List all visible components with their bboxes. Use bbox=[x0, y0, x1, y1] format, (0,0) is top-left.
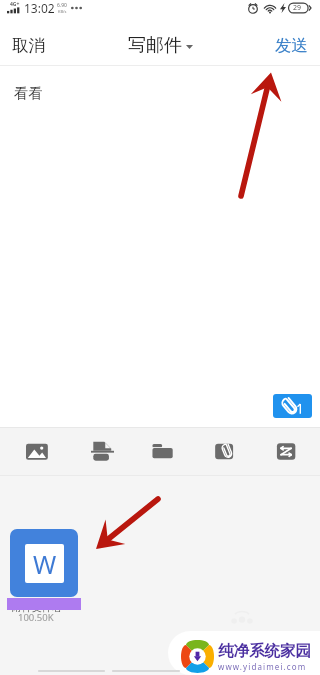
staticText: 13:02 bbox=[24, 0, 55, 16]
button[interactable]: Transfer bbox=[256, 428, 320, 475]
staticText: 纯净系统家园 bbox=[218, 641, 311, 661]
staticText: 看看 bbox=[14, 84, 43, 102]
staticText: www.yidaimei.com bbox=[218, 661, 307, 672]
button[interactable]: Attachments, 1 bbox=[273, 394, 312, 418]
staticText: 发送 bbox=[275, 35, 308, 56]
button[interactable]: Scan document bbox=[64, 428, 128, 475]
staticText: 100.50K bbox=[18, 611, 54, 624]
button[interactable]: File folder bbox=[128, 428, 192, 475]
button[interactable]: Word attachment bbox=[10, 529, 78, 597]
staticText: 写邮件 bbox=[128, 34, 182, 57]
button[interactable]: 取消 bbox=[0, 28, 57, 63]
staticText: W bbox=[33, 547, 57, 581]
staticText: 6.90 bbox=[57, 2, 67, 9]
staticText: KB/s bbox=[58, 9, 67, 14]
staticText: 附件文件名 bbox=[12, 601, 62, 614]
staticText: 29 bbox=[293, 3, 302, 13]
button[interactable]: 发送 bbox=[263, 28, 320, 63]
staticText: 取消 bbox=[12, 35, 45, 56]
button[interactable]: Photo bbox=[0, 428, 64, 475]
button[interactable]: Attachment bbox=[192, 428, 256, 475]
button[interactable]: 写邮件 bbox=[122, 29, 199, 62]
staticText: 4G+ bbox=[10, 1, 20, 8]
